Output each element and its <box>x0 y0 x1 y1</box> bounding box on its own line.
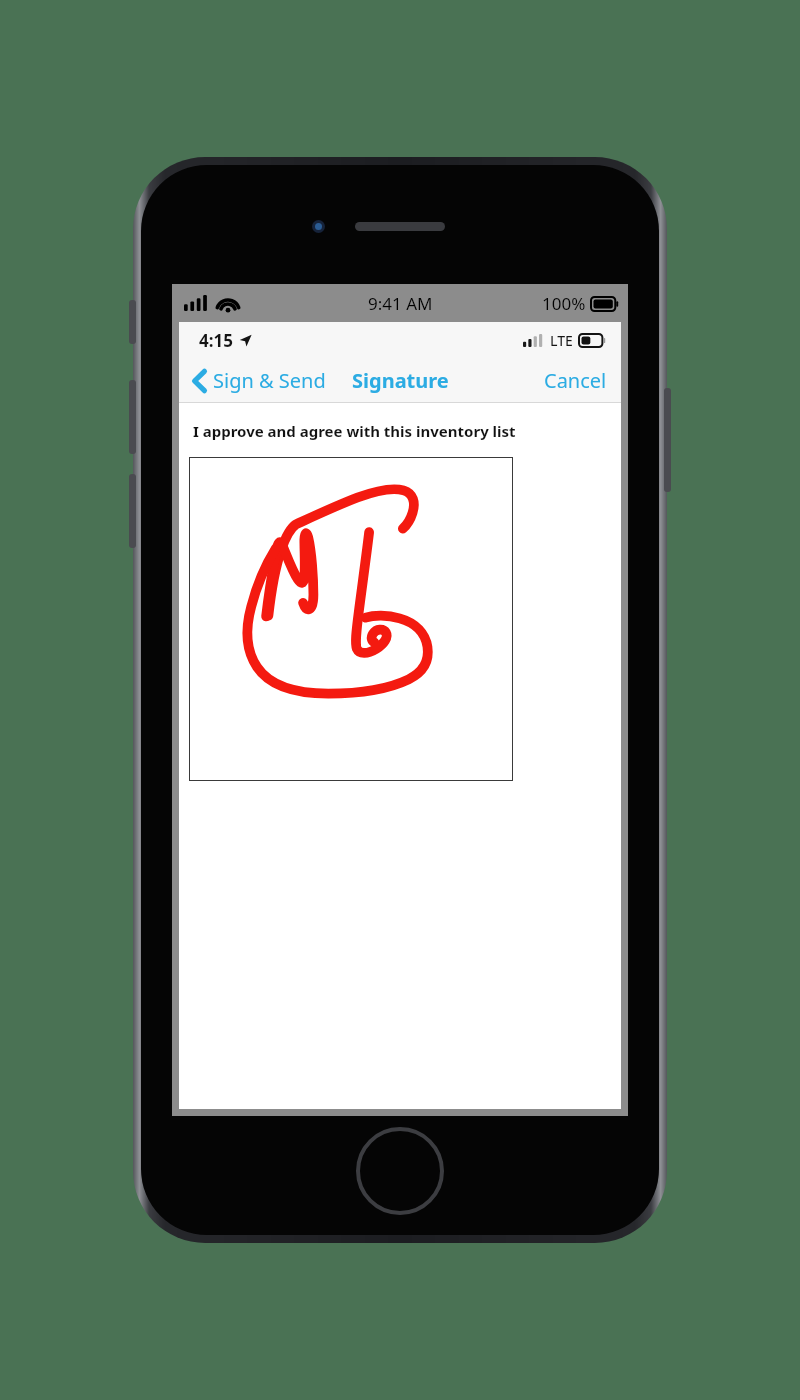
staticText: I approve and agree with this inventory … <box>193 421 516 441</box>
staticText: LTE <box>550 331 573 350</box>
staticText: Cancel <box>544 367 607 394</box>
staticText: Signature <box>352 367 449 394</box>
staticText: Sign & Send <box>213 367 326 394</box>
staticText: 4:15 <box>199 329 233 352</box>
staticText: 9:41 AM <box>368 292 433 315</box>
staticText: 100% <box>542 292 586 315</box>
button[interactable]: Signature pad <box>189 457 513 781</box>
button[interactable]: Cancel <box>530 361 621 400</box>
button[interactable]: Sign & Send <box>179 361 334 400</box>
